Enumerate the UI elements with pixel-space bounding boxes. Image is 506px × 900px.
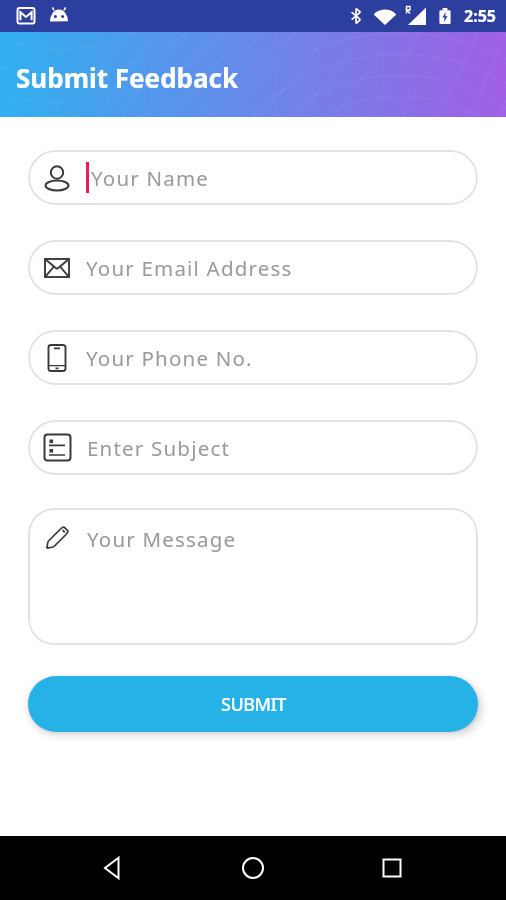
staticText: Your Phone No. (86, 344, 253, 372)
button[interactable]: Enter Subject (28, 420, 478, 475)
staticText: 2:55 (464, 5, 496, 27)
button[interactable] (380, 856, 404, 880)
staticText: Your Email Address (86, 254, 293, 282)
button[interactable]: Your Message (28, 508, 478, 645)
staticText: SUBMIT (221, 692, 286, 717)
button[interactable] (101, 856, 125, 880)
button[interactable]: SUBMIT (28, 676, 478, 732)
button[interactable]: Your Name (28, 150, 478, 205)
staticText: Your Message (87, 525, 237, 553)
staticText: Your Name (91, 164, 210, 192)
staticText: Submit Feedback (16, 60, 239, 95)
button[interactable]: Your Email Address (28, 240, 478, 295)
staticText: Enter Subject (87, 434, 231, 462)
button[interactable] (241, 856, 265, 880)
button[interactable]: Your Phone No. (28, 330, 478, 385)
